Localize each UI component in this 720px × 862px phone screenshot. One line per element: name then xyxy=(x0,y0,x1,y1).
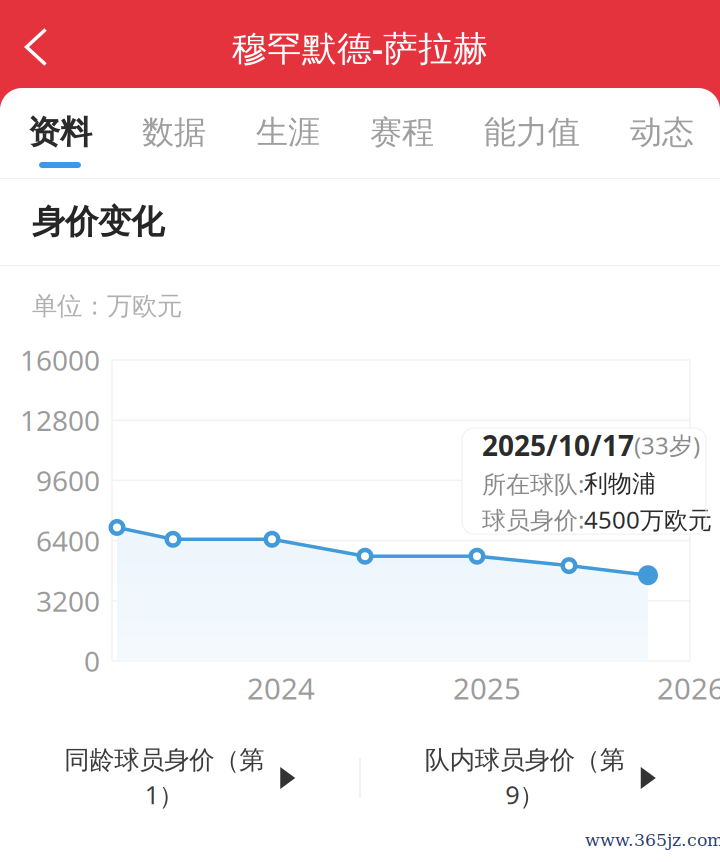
staticText: 3200 xyxy=(36,582,100,619)
staticText: 动态 xyxy=(630,113,694,152)
button[interactable]: 同龄球员身价（第 xyxy=(0,730,359,826)
staticText: 12800 xyxy=(20,402,100,439)
button[interactable]: 能力值 xyxy=(484,88,580,178)
staticText: 穆罕默德-萨拉赫 xyxy=(232,24,488,70)
staticText: 能力值 xyxy=(484,113,580,152)
staticText: 4500万欧元 xyxy=(584,504,712,535)
staticText: 2024 xyxy=(247,668,315,707)
staticText: (33岁) xyxy=(634,429,700,461)
staticText: 利物浦 xyxy=(584,469,656,498)
staticText: www.365jz.com xyxy=(585,830,720,850)
staticText: 6400 xyxy=(36,522,100,559)
button[interactable]: 生涯 xyxy=(256,88,320,178)
staticText: 2025 xyxy=(453,668,521,707)
staticText: 资料 xyxy=(28,113,92,152)
staticText: 数据 xyxy=(142,113,206,152)
button[interactable]: 资料 xyxy=(28,88,92,178)
button[interactable]: 数据 xyxy=(142,88,206,178)
staticText: 单位：万欧元 xyxy=(32,290,182,321)
staticText: 9600 xyxy=(36,462,100,499)
button[interactable]: 赛程 xyxy=(370,88,434,178)
staticText: 生涯 xyxy=(256,113,320,152)
staticText: 赛程 xyxy=(370,113,434,152)
staticText: 2026 xyxy=(657,668,720,707)
staticText: 0 xyxy=(84,642,100,680)
button[interactable]: 队内球员身价（第 xyxy=(360,730,720,826)
staticText: 2025/10/17 xyxy=(482,426,634,464)
staticText: 9） xyxy=(505,778,544,811)
staticText: 16000 xyxy=(20,341,100,379)
staticText: 身价变化 xyxy=(32,201,164,242)
staticText: 所在球队: xyxy=(482,468,584,500)
button[interactable]: 动态 xyxy=(630,88,694,178)
staticText: 1） xyxy=(145,778,184,811)
staticText: 同龄球员身价（第 xyxy=(64,745,264,776)
button[interactable]: Back xyxy=(0,13,62,75)
staticText: 球员身价: xyxy=(482,504,584,535)
staticText: 队内球员身价（第 xyxy=(425,745,625,776)
